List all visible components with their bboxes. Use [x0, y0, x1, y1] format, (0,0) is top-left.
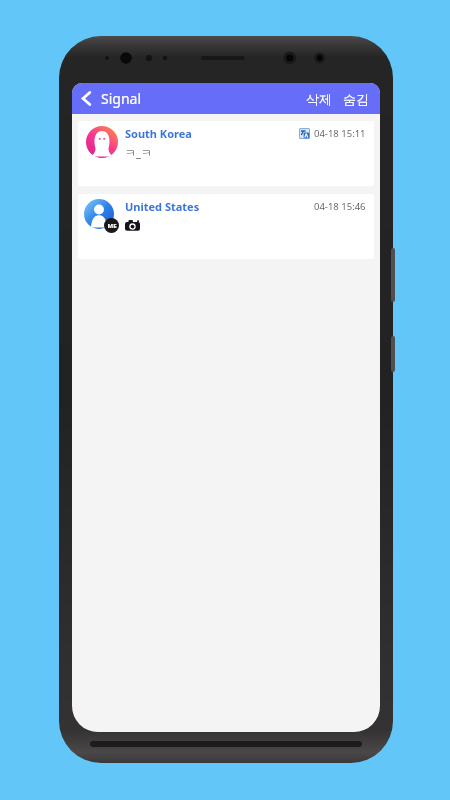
- staticText: 04-18 15:46: [314, 200, 366, 213]
- staticText: ㅋ_ㅋ: [125, 145, 152, 160]
- button[interactable]: 삭제: [301, 83, 337, 114]
- staticText: United States: [125, 199, 200, 214]
- staticText: 숨김: [343, 91, 369, 107]
- staticText: 삭제: [306, 91, 332, 107]
- button[interactable]: Signal: [101, 89, 142, 108]
- staticText: 04-18 15:11: [314, 127, 366, 140]
- button[interactable]: ME: [78, 194, 374, 259]
- staticText: ME: [107, 222, 117, 230]
- staticText: South Korea: [125, 126, 192, 141]
- button[interactable]: Back: [72, 83, 101, 114]
- button[interactable]: South Korea: [78, 121, 374, 186]
- button[interactable]: 숨김: [337, 83, 380, 114]
